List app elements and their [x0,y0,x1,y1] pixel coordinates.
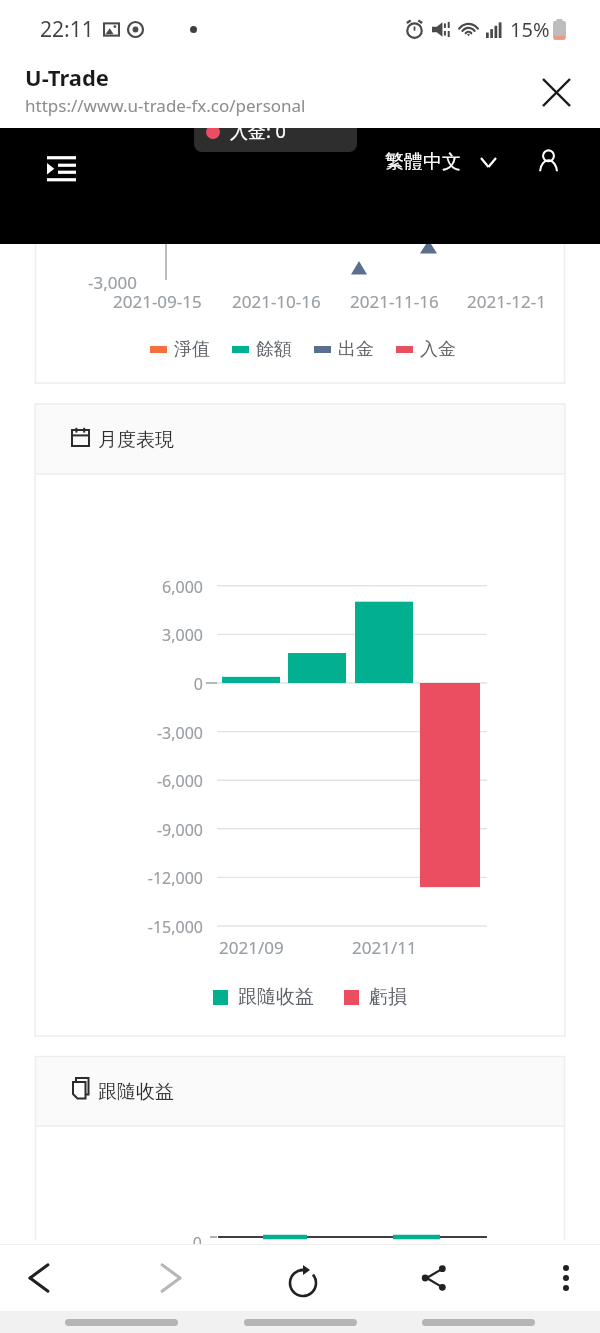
staticText: 跟隨收益 [238,985,314,1009]
button[interactable]: 繁體中文 [375,142,506,182]
staticText: 淨值 [174,338,210,361]
staticText: -9,000 [83,819,203,841]
staticText: 繁體中文 [385,150,461,174]
button[interactable]: Share [406,1250,462,1306]
staticText: 6,000 [83,576,203,598]
staticText: 2021-10-16 [232,290,352,313]
staticText: -3,000 [83,722,203,744]
staticText: 3,000 [83,624,203,646]
button[interactable]: Reload [275,1250,331,1306]
staticText: 入金 [420,338,456,361]
staticText: -15,000 [83,916,203,938]
button[interactable]: Menu [34,141,88,195]
staticText: 2021/11 [352,936,472,959]
staticText: 2021/09 [219,936,339,959]
staticText: U-Trade [25,62,109,92]
button[interactable]: Back [11,1250,67,1306]
button[interactable]: Forward [143,1250,199,1306]
staticText: 22:11 [40,15,94,44]
staticText: 15% [510,16,550,43]
staticText: 餘額 [256,338,292,361]
staticText: 2021-12-1 [467,290,587,313]
staticText: -12,000 [83,867,203,889]
staticText: 出金 [338,338,374,361]
staticText: 虧損 [369,985,407,1009]
staticText: 入金: 0 [230,119,286,144]
staticText: 2021-11-16 [350,290,470,313]
button[interactable]: More options [538,1250,594,1306]
staticText: 2021-09-15 [113,290,233,313]
staticText: 0 [83,673,203,695]
staticText: 0 [182,1232,202,1254]
button[interactable]: Account [528,142,568,182]
staticText: https://www.u-trade-fx.co/personal [25,94,306,117]
button[interactable]: Close [532,68,580,116]
staticText: -3,000 [47,271,137,294]
staticText: 跟隨收益 [98,1080,248,1104]
staticText: 月度表現 [98,428,248,452]
staticText: -6,000 [83,770,203,792]
